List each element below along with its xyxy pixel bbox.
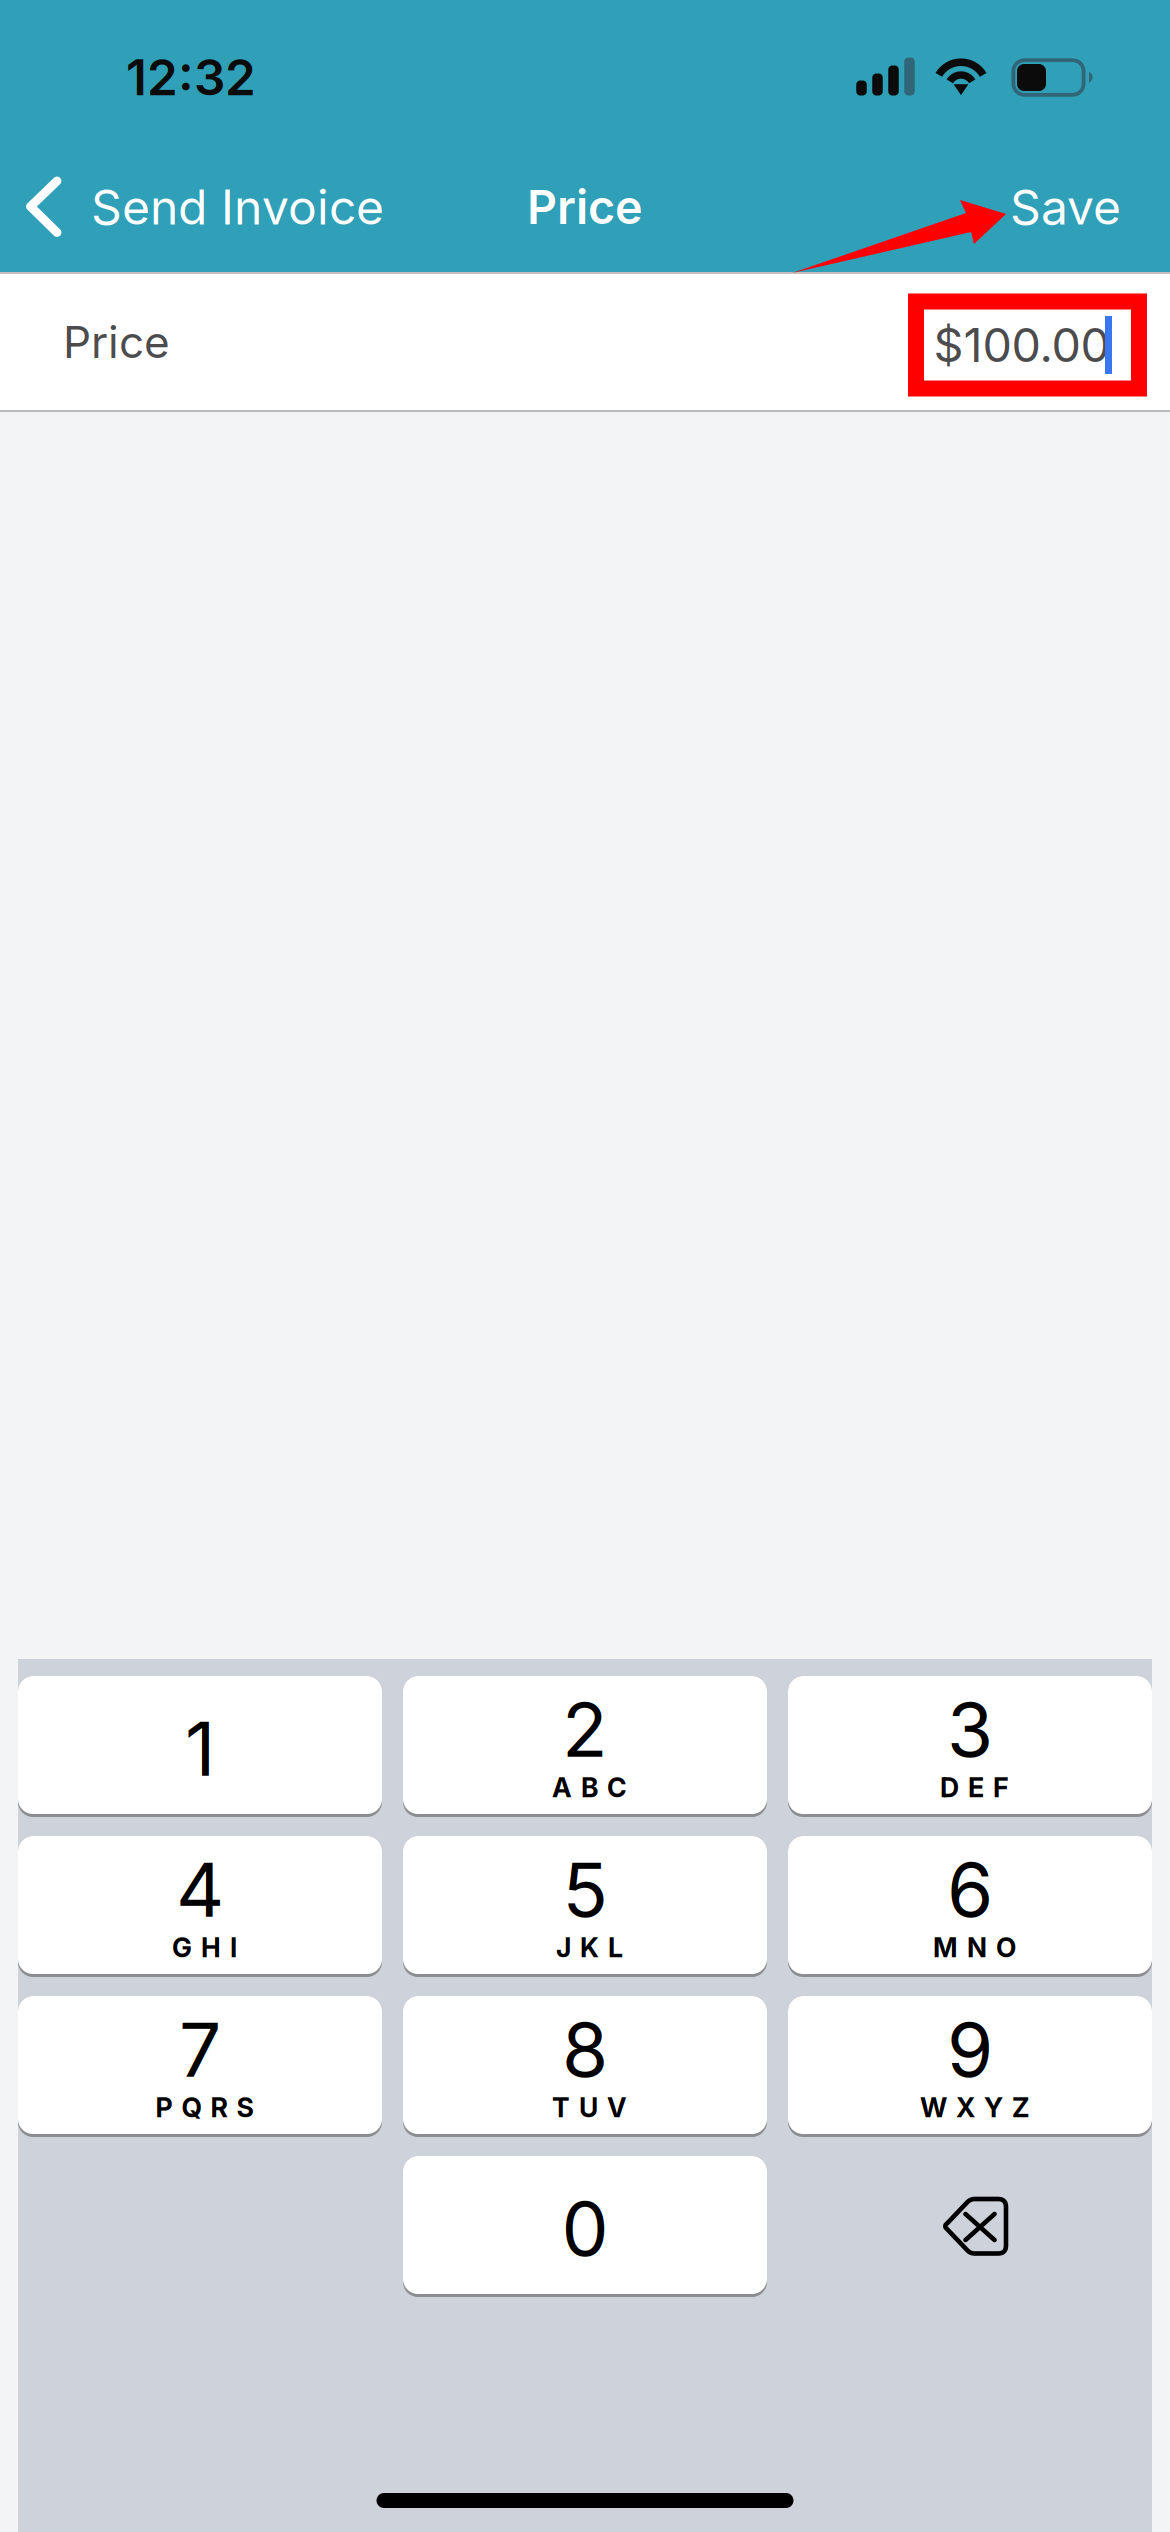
staticText: TUV xyxy=(552,2091,627,2124)
button[interactable]: 7 xyxy=(18,1996,382,2137)
staticText: 6 xyxy=(947,1844,993,1935)
staticText: 7 xyxy=(179,2004,221,2095)
button[interactable]: 6 xyxy=(788,1836,1152,1977)
staticText: DEF xyxy=(940,1771,1009,1804)
button[interactable]: 5 xyxy=(403,1836,767,1977)
staticText: 8 xyxy=(562,2004,608,2095)
button[interactable]: 9 xyxy=(788,1996,1152,2137)
button[interactable]: 1 xyxy=(18,1676,382,1817)
staticText: $100.00 xyxy=(933,317,1109,373)
button[interactable]: Save xyxy=(986,141,1170,272)
staticText: 5 xyxy=(562,1844,607,1935)
staticText: 1 xyxy=(185,1703,215,1794)
button[interactable]: 3 xyxy=(788,1676,1152,1817)
staticText: GHI xyxy=(172,1931,237,1964)
staticText: 4 xyxy=(176,1844,224,1935)
staticText: 12:32 xyxy=(126,47,256,107)
staticText: Price xyxy=(63,315,170,369)
staticText: 9 xyxy=(947,2004,993,2095)
staticText: JKL xyxy=(556,1931,623,1964)
button[interactable]: 0 xyxy=(403,2156,767,2297)
staticText: 0 xyxy=(561,2183,608,2274)
staticText: PQRS xyxy=(155,2091,253,2124)
button[interactable]: 4 xyxy=(18,1836,382,1977)
staticText: WXYZ xyxy=(920,2091,1029,2124)
staticText: ABC xyxy=(552,1771,627,1804)
button[interactable]: Delete xyxy=(788,2156,1152,2297)
staticText: 3 xyxy=(947,1684,993,1775)
staticText: MNO xyxy=(933,1931,1016,1964)
button[interactable]: 8 xyxy=(403,1996,767,2137)
staticText: Price xyxy=(527,179,643,235)
staticText: Save xyxy=(1010,178,1121,236)
staticText: Send Invoice xyxy=(91,178,384,236)
button[interactable]: Send Invoice xyxy=(0,141,408,272)
staticText: 2 xyxy=(562,1684,608,1775)
button[interactable]: 2 xyxy=(403,1676,767,1817)
